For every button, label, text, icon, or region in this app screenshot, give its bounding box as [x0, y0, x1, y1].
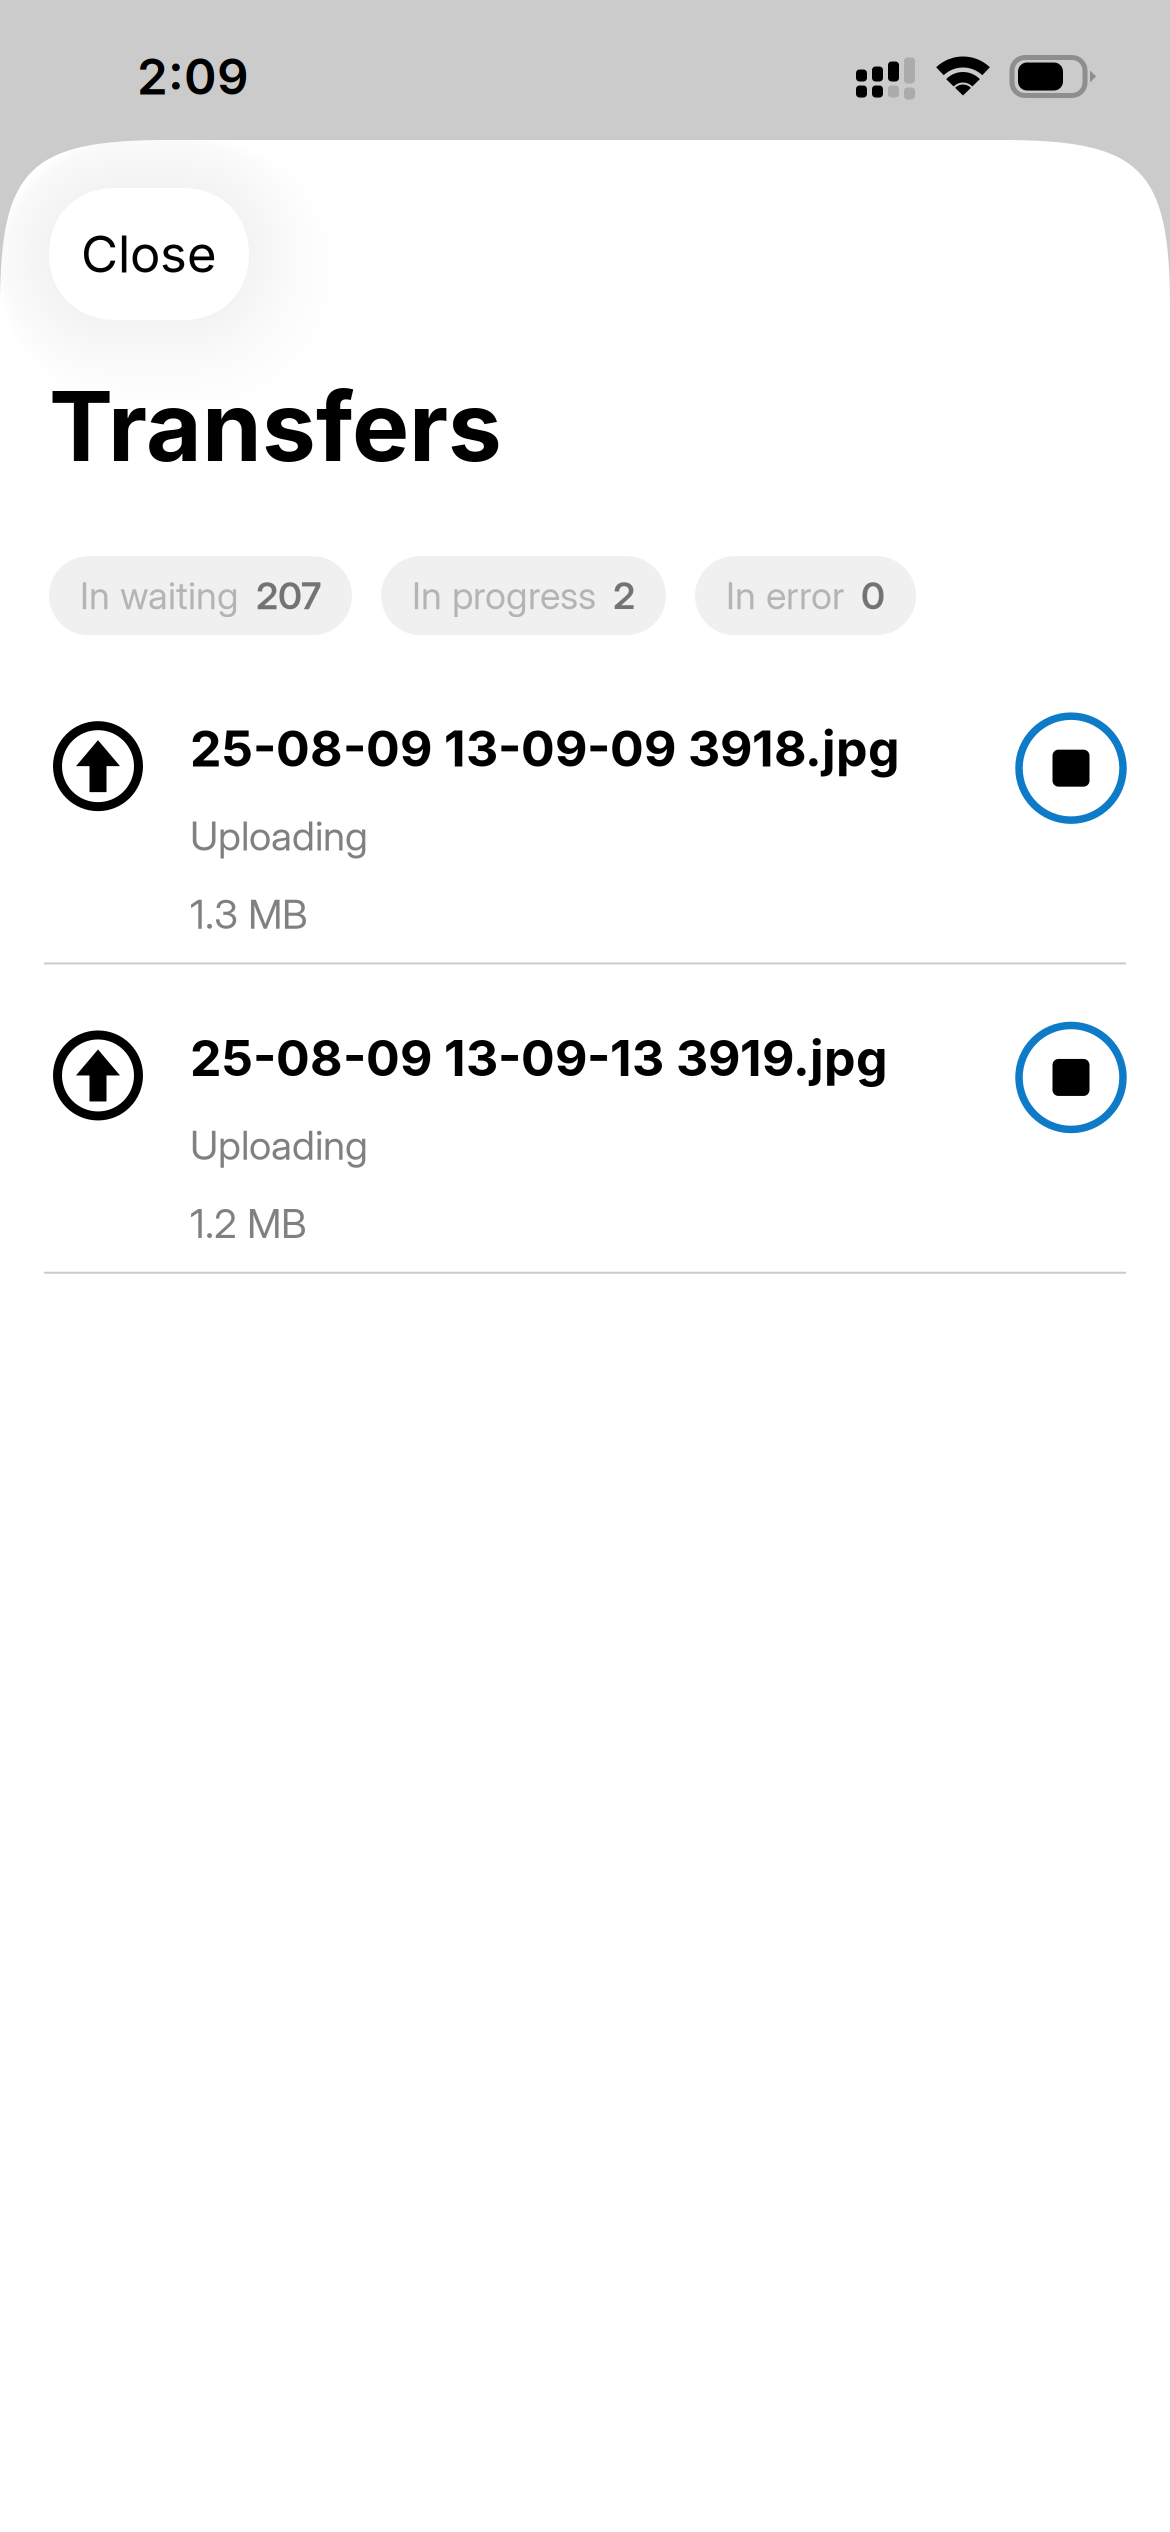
button[interactable]: In waiting — [49, 556, 352, 635]
staticText: 2 — [613, 573, 635, 618]
staticText: 207 — [256, 573, 321, 618]
staticText: Transfers — [49, 368, 502, 484]
staticText: Uploading — [190, 812, 368, 860]
button[interactable]: Stop transfer — [1015, 1021, 1127, 1133]
staticText: Close — [81, 223, 217, 285]
staticText: Uploading — [190, 1121, 368, 1169]
button[interactable]: 25-08-09 13-09-13 3919.jpg — [0, 964, 1170, 1274]
staticText: 25-08-09 13-09-13 3919.jpg — [190, 1027, 888, 1088]
staticText: 1.2 MB — [190, 1199, 307, 1248]
staticText: In waiting — [80, 573, 239, 618]
staticText: In progress — [412, 573, 596, 618]
staticText: 2:09 — [137, 47, 249, 106]
staticText: 25-08-09 13-09-09 3918.jpg — [190, 718, 900, 779]
staticText: 1.3 MB — [190, 890, 308, 938]
button[interactable]: Stop transfer — [1015, 712, 1127, 824]
button[interactable]: Close — [49, 188, 249, 320]
button[interactable]: In progress — [381, 556, 666, 635]
button[interactable]: 25-08-09 13-09-09 3918.jpg — [0, 655, 1170, 964]
staticText: 0 — [861, 573, 885, 618]
staticText: In error — [726, 573, 844, 618]
button[interactable]: In error — [695, 556, 916, 635]
